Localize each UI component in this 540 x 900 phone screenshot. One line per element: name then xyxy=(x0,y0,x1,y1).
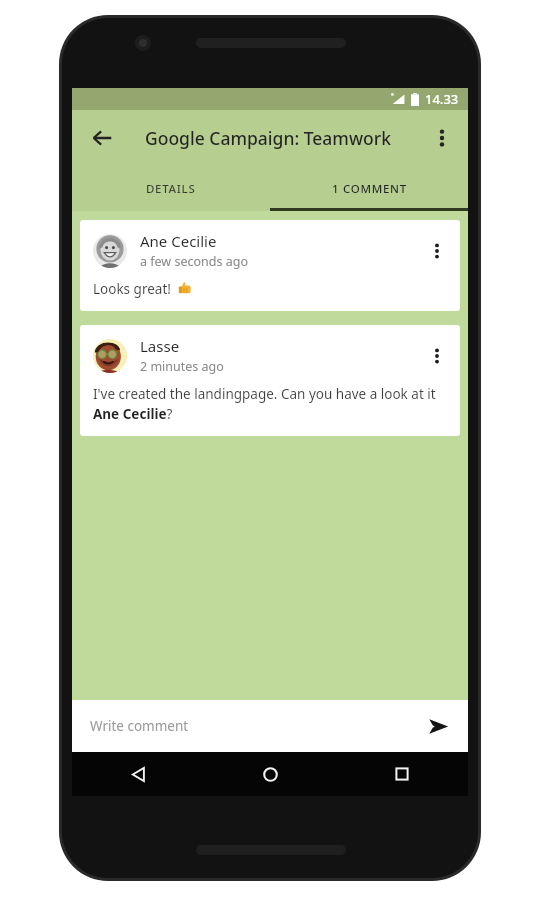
button[interactable]: More options xyxy=(422,118,462,158)
button[interactable]: Write comment xyxy=(72,700,468,752)
button[interactable]: Comment options xyxy=(420,339,454,373)
staticText: Lasse xyxy=(140,336,180,356)
button[interactable]: Back xyxy=(72,752,204,796)
staticText: Ane Cecilie xyxy=(140,231,217,251)
button[interactable]: 1 COMMENT xyxy=(270,166,468,211)
button[interactable]: Home xyxy=(204,752,336,796)
staticText: 2 minutes ago xyxy=(140,358,224,375)
button[interactable]: DETAILS xyxy=(72,166,270,211)
staticText: 1 COMMENT xyxy=(332,181,407,197)
staticText: Write comment xyxy=(90,717,189,735)
staticText: I've created the landingpage. Can you ha… xyxy=(93,385,446,423)
button[interactable]: Send xyxy=(418,706,458,746)
staticText: DETAILS xyxy=(146,181,196,197)
staticText: Google Campaign: Teamwork xyxy=(145,126,391,150)
button[interactable]: Recent apps xyxy=(336,752,468,796)
button[interactable]: Ane Cecilie xyxy=(80,220,460,311)
button[interactable]: Comment options xyxy=(420,234,454,268)
staticText: Looks great! xyxy=(93,280,175,298)
button[interactable]: Back xyxy=(80,116,124,160)
button[interactable]: Lasse xyxy=(80,325,460,436)
staticText: a few seconds ago xyxy=(140,253,248,270)
staticText: 14.33 xyxy=(425,90,459,108)
